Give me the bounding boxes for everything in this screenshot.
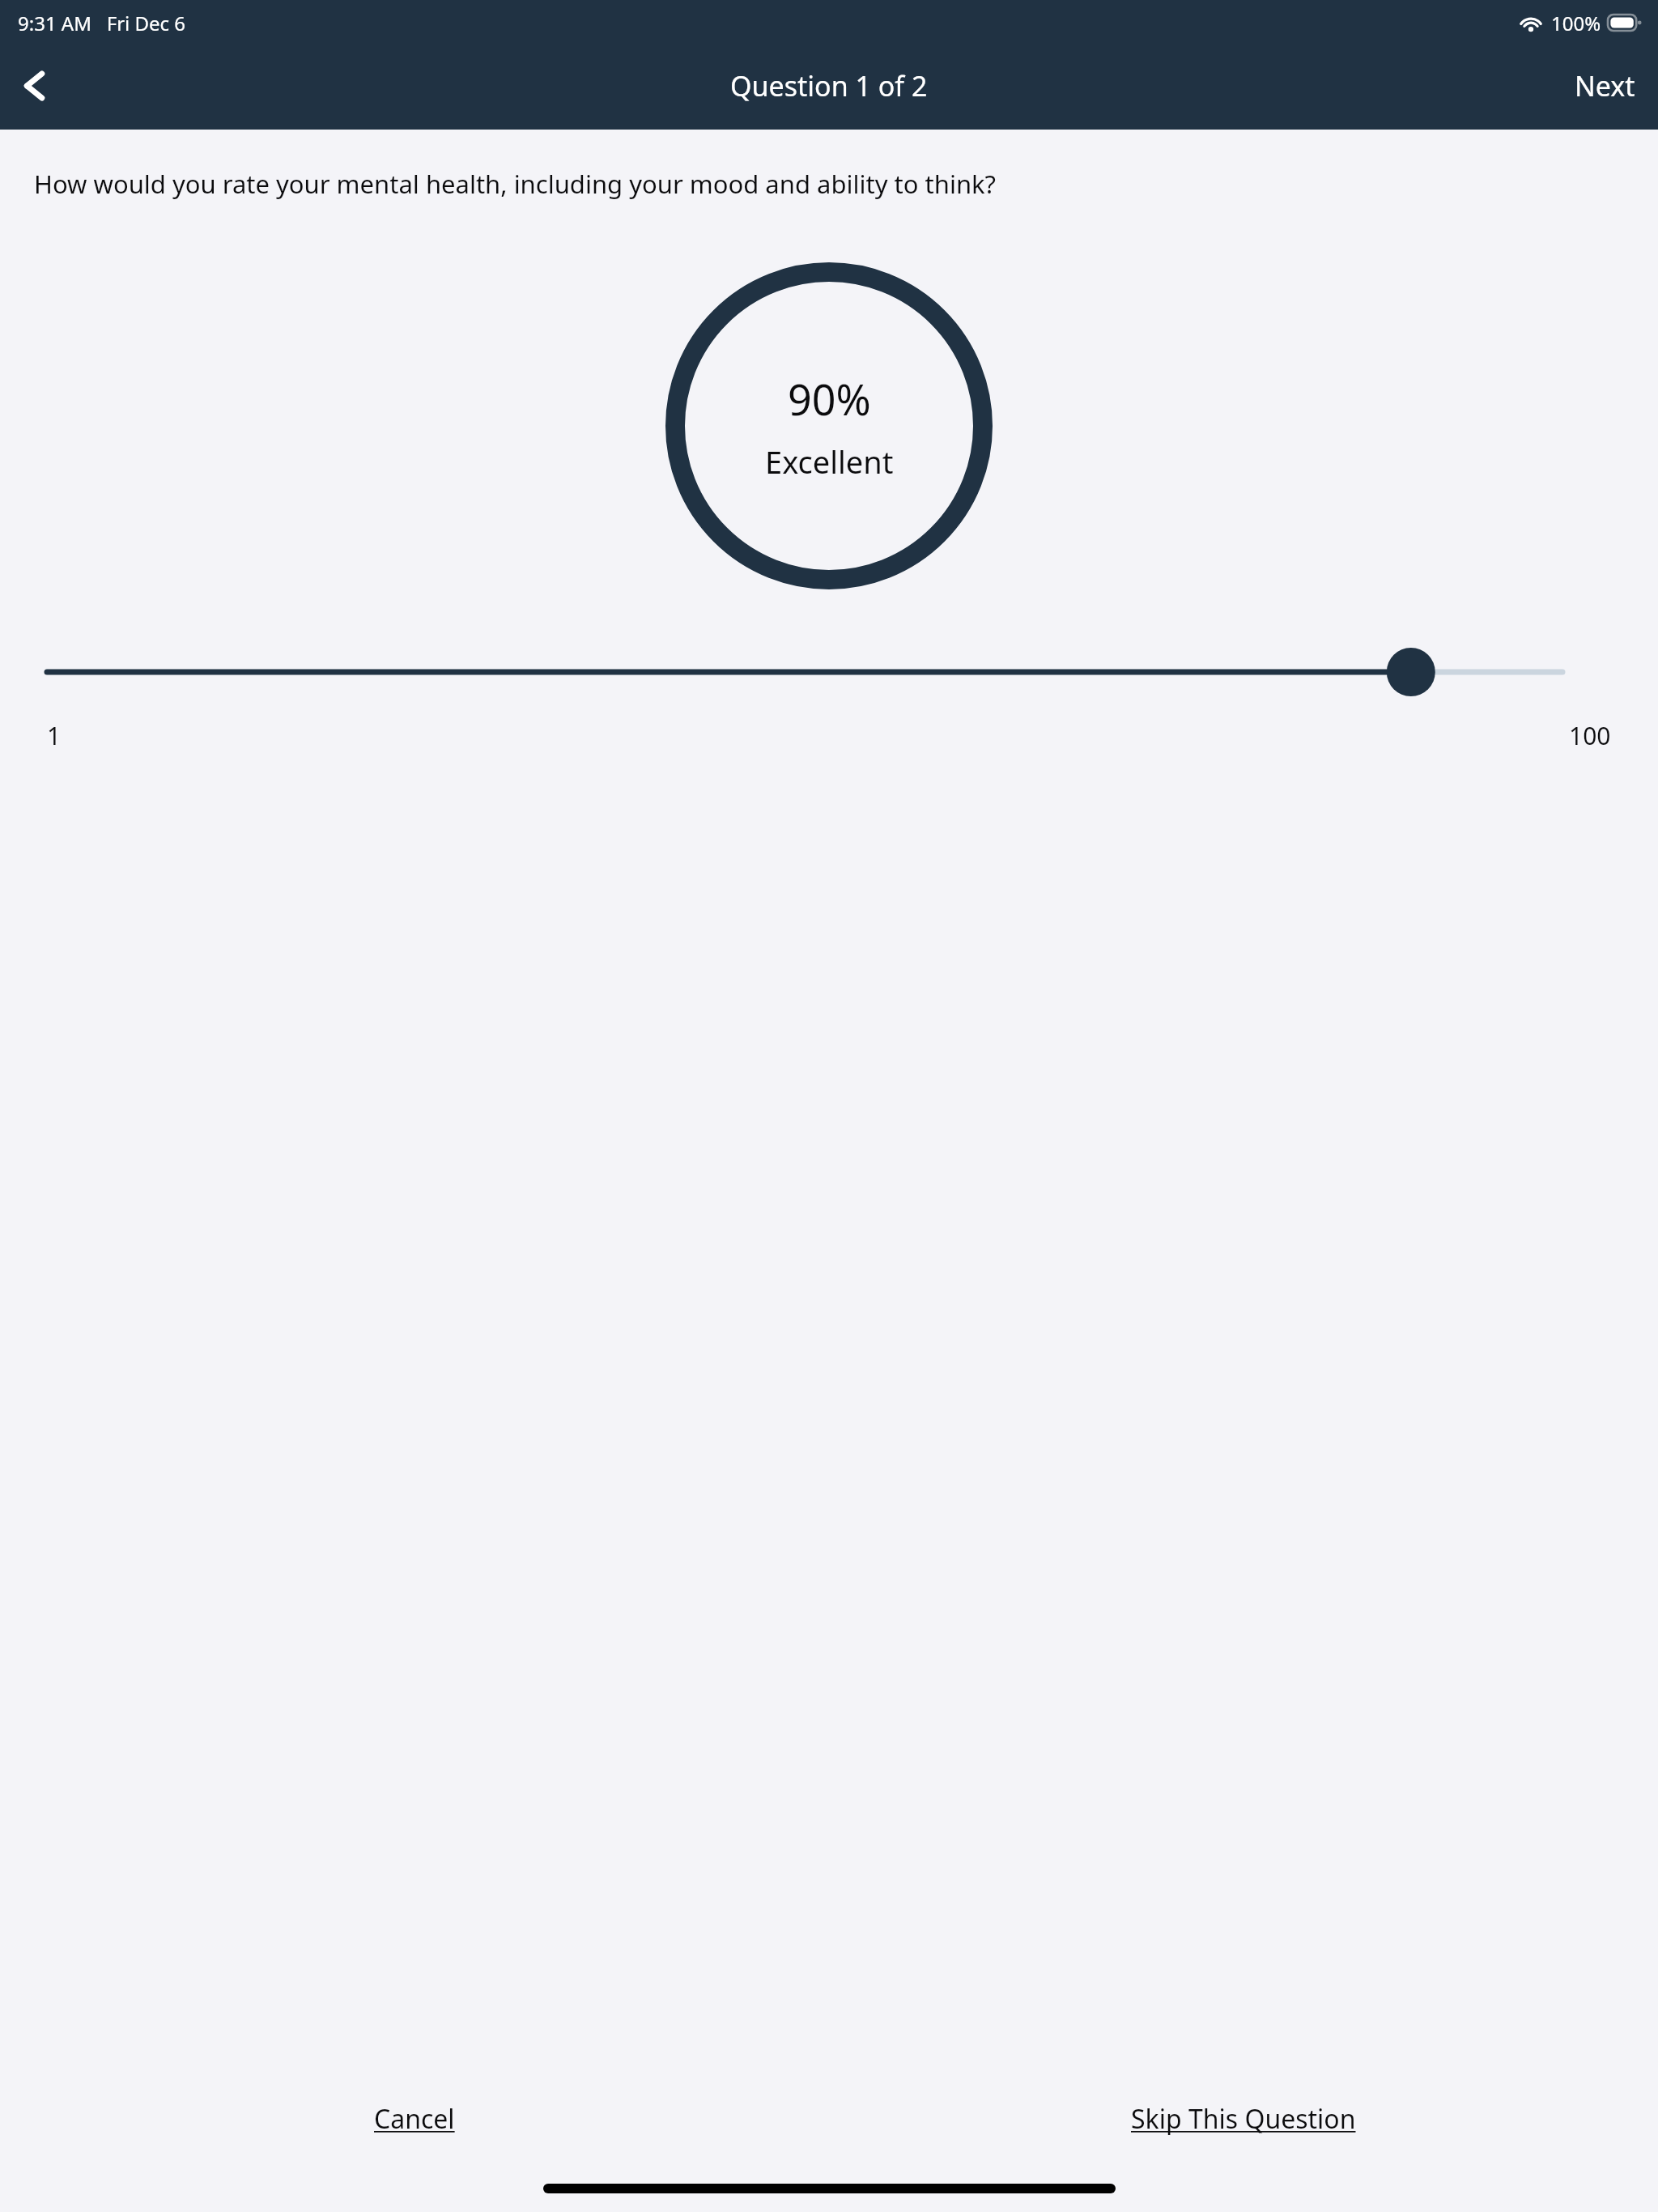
staticText: 100 [1569,719,1611,752]
staticText: Cancel [374,2101,455,2137]
staticText: Next [1575,67,1635,104]
staticText: 100% [1551,10,1601,36]
button[interactable]: Back [0,51,70,121]
staticText: 1 [47,719,62,752]
button[interactable]: Cancel [355,2088,474,2150]
staticText: Question 1 of 2 [730,67,928,104]
staticText: 9:31 AM Fri Dec 6 [18,10,186,36]
staticText: How would you rate your mental health, i… [34,167,997,201]
staticText: Skip This Question [1131,2101,1356,2137]
button[interactable]: Next [1552,53,1658,119]
staticText: 90% [788,370,871,428]
button[interactable]: Skip This Question [1112,2088,1375,2150]
button[interactable]: Rating slider [0,643,1658,701]
staticText: Excellent [765,440,894,483]
